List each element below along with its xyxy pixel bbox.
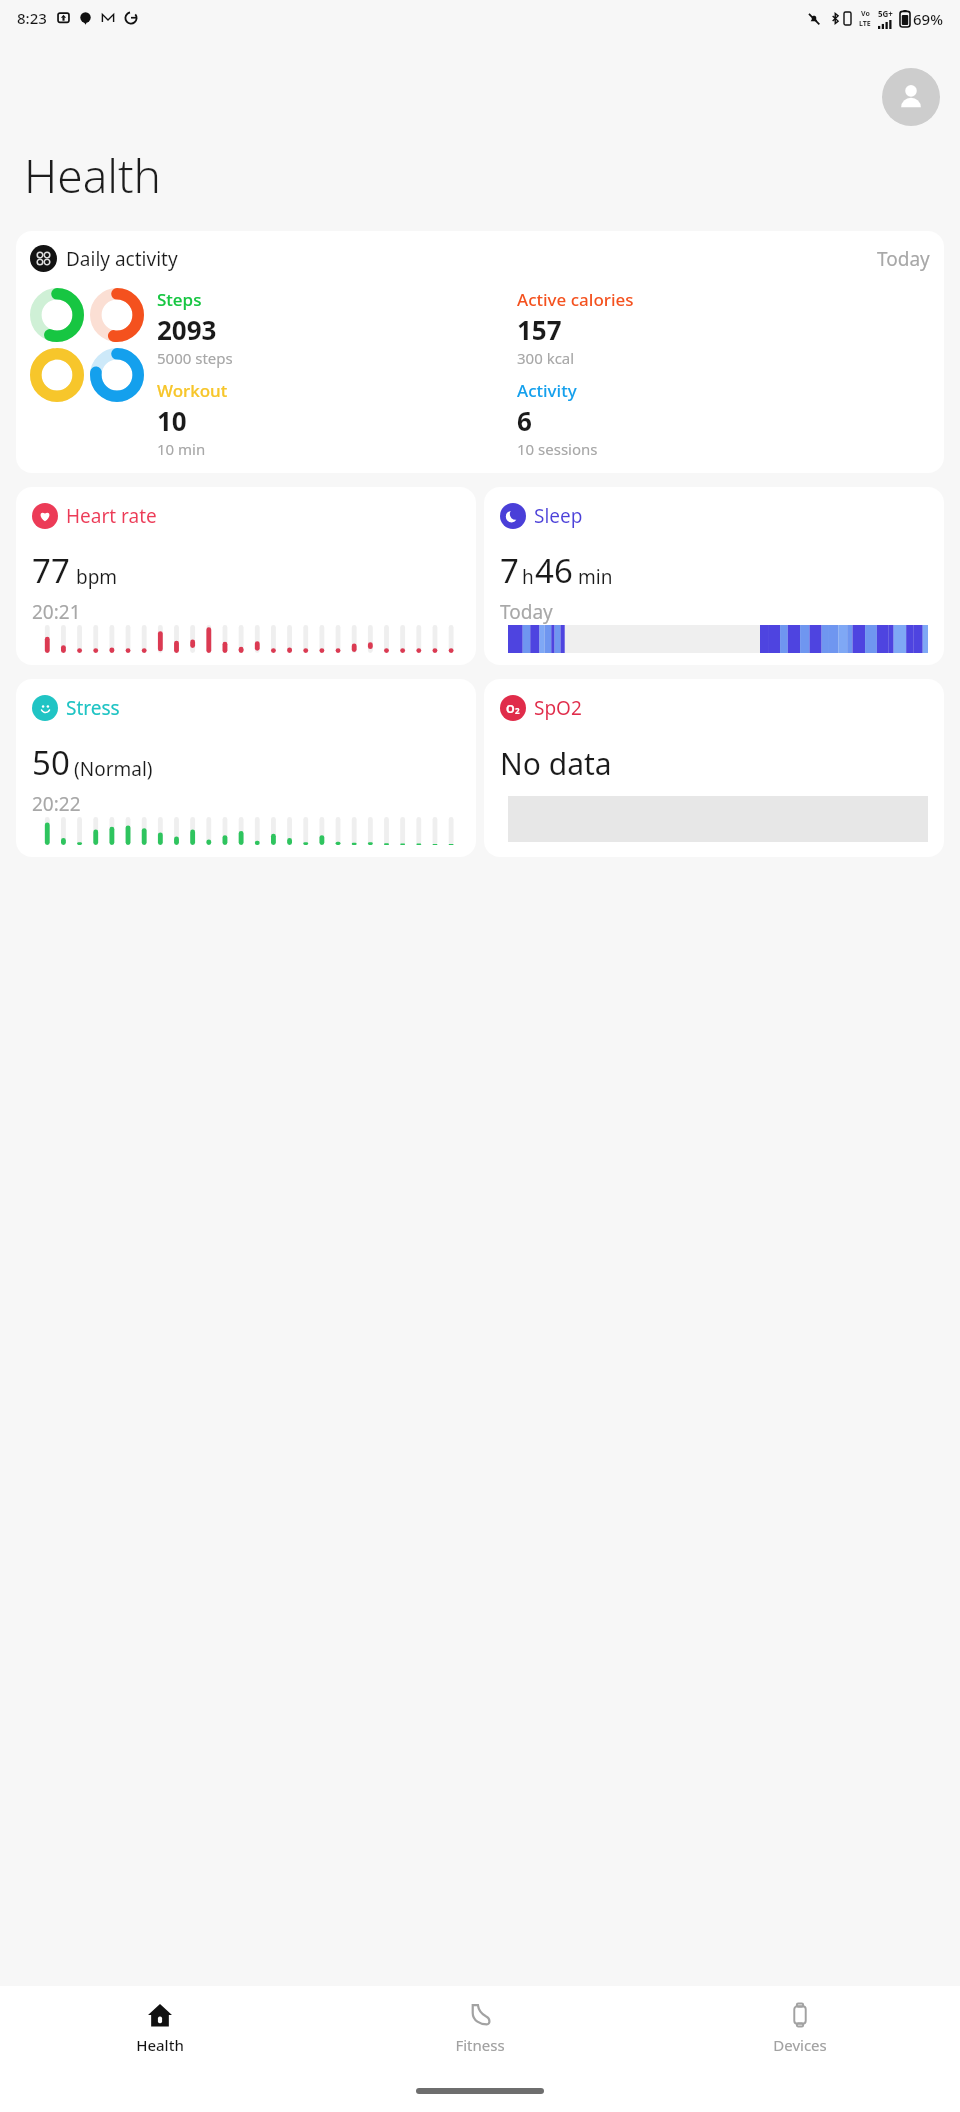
- staticText: 157: [517, 312, 562, 347]
- staticText: Daily activity: [66, 246, 178, 272]
- staticText: SpO2: [534, 695, 582, 721]
- staticText: Steps: [157, 288, 202, 311]
- staticText: 46: [535, 548, 573, 593]
- staticText: 5000 steps: [157, 348, 233, 368]
- staticText: h: [522, 564, 534, 590]
- staticText: 2: [515, 705, 520, 716]
- button[interactable]: Profile: [882, 68, 940, 126]
- staticText: 5G+: [878, 8, 893, 19]
- staticText: Today: [877, 246, 930, 272]
- staticText: No data: [500, 743, 612, 784]
- staticText: 300 kcal: [517, 348, 575, 368]
- staticText: Health: [136, 2035, 184, 2055]
- staticText: Devices: [773, 2035, 827, 2055]
- staticText: Health: [24, 144, 161, 207]
- staticText: O: [506, 701, 515, 716]
- button[interactable]: Devices: [640, 1986, 960, 2070]
- staticText: Activity: [517, 379, 577, 402]
- staticText: 6: [517, 403, 532, 438]
- staticText: LTE: [859, 19, 871, 29]
- button[interactable]: Heart rate: [16, 487, 476, 665]
- staticText: 7: [500, 548, 519, 593]
- staticText: Sleep: [534, 503, 583, 529]
- staticText: 2093: [157, 312, 217, 347]
- staticText: Workout: [157, 379, 228, 402]
- staticText: 77: [32, 548, 70, 593]
- staticText: Vo: [861, 9, 870, 19]
- staticText: bpm: [76, 564, 118, 590]
- button[interactable]: Fitness: [320, 1986, 640, 2070]
- button[interactable]: Sleep: [484, 487, 944, 665]
- button[interactable]: Stress: [16, 679, 476, 857]
- staticText: 20:22: [32, 791, 81, 817]
- button[interactable]: O: [484, 679, 944, 857]
- staticText: min: [578, 564, 613, 590]
- staticText: 10: [157, 403, 187, 438]
- staticText: 8:23: [17, 8, 47, 28]
- staticText: Fitness: [455, 2035, 505, 2055]
- staticText: Heart rate: [66, 503, 157, 529]
- staticText: 69%: [913, 9, 943, 29]
- staticText: Stress: [66, 695, 120, 721]
- staticText: 20:21: [32, 599, 81, 625]
- staticText: 50: [32, 740, 70, 785]
- staticText: 10 sessions: [517, 439, 598, 459]
- staticText: Active calories: [517, 288, 634, 311]
- button[interactable]: Daily activity: [16, 231, 944, 473]
- button[interactable]: Health: [0, 1986, 320, 2070]
- staticText: 10 min: [157, 439, 206, 459]
- staticText: Today: [500, 599, 553, 625]
- staticText: (Normal): [74, 756, 153, 782]
